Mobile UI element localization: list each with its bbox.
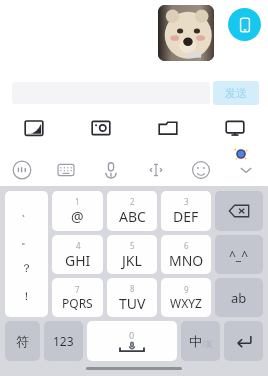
staticText: 发送 (225, 86, 247, 100)
staticText: ？ (21, 261, 32, 275)
button[interactable]: Input method (0, 153, 44, 186)
button[interactable] (215, 191, 263, 231)
staticText: ab (231, 289, 247, 307)
staticText: 符 (16, 333, 29, 349)
button[interactable]: Keyboard (44, 153, 88, 186)
staticText: DEF (173, 207, 199, 226)
button[interactable]: 、 (5, 191, 48, 317)
button[interactable]: 9 (161, 278, 211, 317)
button[interactable]: 123 (44, 321, 83, 361)
button[interactable]: 2 (107, 191, 157, 231)
button[interactable] (224, 321, 263, 361)
staticText: ！ (21, 289, 32, 303)
staticText: TUV (119, 294, 146, 313)
button[interactable]: Cursor (133, 153, 178, 186)
staticText: 、 (21, 205, 32, 219)
staticText: 7 (75, 284, 80, 295)
staticText: 1 (75, 196, 80, 207)
staticText: 中 (189, 333, 202, 349)
button[interactable]: 6 (161, 235, 211, 274)
button[interactable]: ab (215, 278, 263, 317)
button[interactable]: Folder (134, 111, 201, 145)
staticText: ABC (119, 207, 146, 226)
staticText: @ (71, 207, 84, 226)
staticText: GHI (65, 251, 91, 270)
button[interactable]: ^_^ (215, 235, 263, 274)
button[interactable]: 7 (52, 278, 103, 317)
button[interactable]: 中 (181, 321, 220, 361)
button[interactable]: 3 (161, 191, 211, 231)
button[interactable]: Device (228, 8, 261, 41)
button[interactable]: 发送 (213, 81, 259, 105)
staticText: 5 (130, 240, 135, 251)
staticText: 3 (184, 196, 189, 207)
staticText: MNO (169, 251, 204, 270)
button[interactable]: Camera (67, 111, 134, 145)
staticText: 2 (130, 196, 135, 207)
staticText: PQRS (62, 295, 93, 311)
staticText: 6 (184, 240, 189, 251)
button[interactable]: 5 (107, 235, 157, 274)
staticText: 0 (129, 329, 135, 341)
button[interactable]: 8 (107, 278, 157, 317)
button[interactable] (158, 5, 214, 61)
button[interactable]: Emoji (178, 153, 223, 186)
staticText: /英 (202, 338, 213, 349)
staticText: JKL (122, 251, 142, 270)
button[interactable]: Hide keyboard (223, 153, 268, 186)
staticText: WXYZ (170, 295, 202, 311)
staticText: 123 (53, 333, 74, 349)
button[interactable]: 符 (5, 321, 40, 361)
button[interactable]: Image (0, 111, 67, 145)
staticText: 8 (130, 283, 135, 294)
button[interactable]: Screen (201, 111, 268, 145)
staticText: 9 (184, 284, 189, 295)
button[interactable]: Voice input (88, 153, 133, 186)
button[interactable]: 0 (87, 321, 177, 361)
staticText: 。 (21, 233, 32, 247)
staticText: 4 (76, 240, 81, 251)
button[interactable]: 4 (52, 235, 103, 274)
button[interactable]: 1 (52, 191, 103, 231)
staticText: ^_^ (229, 247, 249, 263)
